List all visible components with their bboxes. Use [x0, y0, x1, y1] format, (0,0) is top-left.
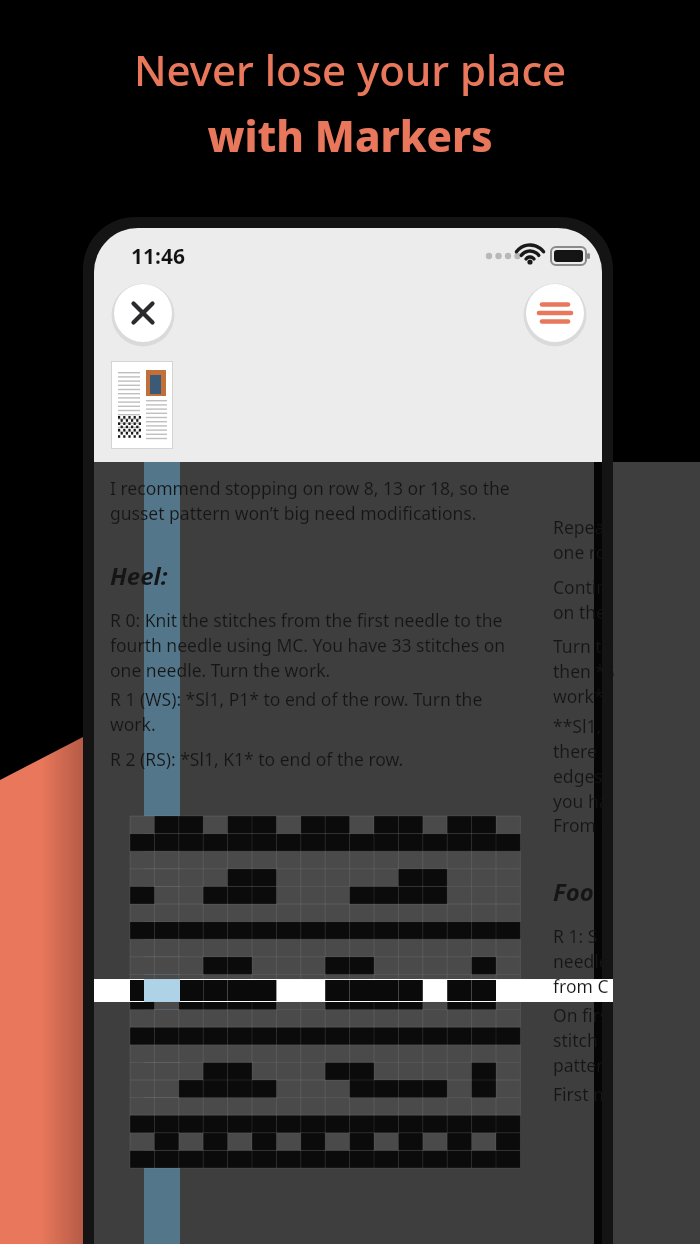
- button[interactable]: Menu: [526, 284, 584, 342]
- staticText: R 2 (RS): *Sl1, K1* to end of the row.: [110, 747, 404, 771]
- staticText: I recommend stopping on row 8, 13 or 18,…: [110, 476, 510, 525]
- staticText: R 1 (WS): *Sl1, P1* to end of the row. T…: [110, 687, 483, 736]
- staticText: On firs stitch pattern: [553, 1003, 615, 1077]
- staticText: Repea one ro: [553, 515, 607, 564]
- staticText: Foo: [553, 875, 594, 908]
- staticText: R 1: S needle from C: [553, 924, 609, 998]
- staticText: **Sl1, there a edges you ha: [553, 714, 612, 813]
- staticText: 11:46: [131, 242, 185, 271]
- staticText: From r: [553, 813, 608, 837]
- button[interactable]: Page 1 thumbnail: [110, 360, 176, 452]
- staticText: Never lose your place: [0, 41, 700, 1244]
- staticText: Heel:: [110, 559, 168, 592]
- button[interactable]: Close: [114, 284, 172, 342]
- staticText: First n: [553, 1082, 604, 1106]
- staticText: R 0: Knit the stitches from the first ne…: [110, 608, 506, 682]
- staticText: Turn th then *S work*.: [553, 634, 615, 708]
- staticText: with Markers: [0, 107, 700, 1244]
- staticText: Contin on the: [553, 575, 608, 624]
